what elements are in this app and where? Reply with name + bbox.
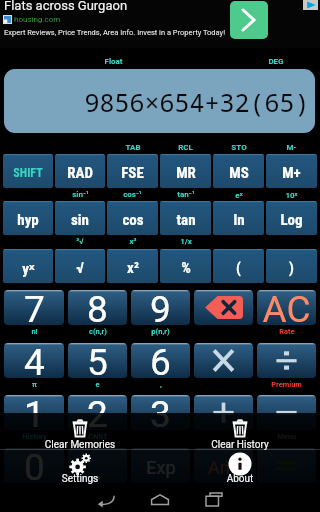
button[interactable]: hyp (3, 201, 53, 235)
staticText: x² (127, 259, 139, 277)
staticText: FSE (121, 164, 144, 182)
button[interactable]: yˣ (3, 249, 53, 283)
staticText: M- (286, 143, 297, 152)
staticText: AC (262, 288, 311, 331)
staticText: 9856×654+32(65) (84, 85, 310, 119)
button[interactable]: ln (213, 201, 264, 235)
button[interactable]: % (160, 249, 211, 283)
button[interactable]: 2 (68, 395, 127, 430)
staticText: tan (176, 211, 196, 229)
button[interactable]: M+ (266, 154, 317, 188)
button[interactable]: sin (55, 201, 105, 235)
button[interactable]: . (68, 448, 127, 483)
button[interactable]: 6 (131, 343, 190, 378)
staticText: eˣ (235, 189, 243, 200)
button[interactable]: 7 (4, 290, 64, 325)
button[interactable]: MS (213, 154, 264, 188)
button[interactable]: x² (107, 249, 158, 283)
button[interactable]: Back (79, 487, 133, 512)
button[interactable]: Clear History (182, 418, 298, 451)
button[interactable]: 0 (4, 448, 64, 483)
button[interactable]: Open ad (230, 1, 268, 39)
staticText: π (32, 380, 37, 389)
staticText: 1 (24, 393, 45, 436)
button[interactable]: √ (55, 249, 105, 283)
button[interactable]: 5 (68, 343, 127, 378)
staticText: 1/x (180, 237, 192, 246)
button[interactable]: Clear Memories (22, 418, 138, 451)
staticText: tan⁻¹ (177, 190, 195, 199)
button[interactable]: tan (160, 201, 211, 235)
staticText: ( (236, 259, 241, 277)
button[interactable]: ) (266, 249, 317, 283)
button[interactable]: 1 (4, 395, 64, 430)
staticText: e (95, 380, 100, 389)
staticText: Flats across Gurgaon (4, 0, 128, 13)
button[interactable]: Minus (257, 395, 316, 430)
button[interactable]: 9 (131, 290, 190, 325)
staticText: About (182, 473, 298, 485)
staticText: RAD (67, 164, 93, 182)
staticText: 9 (150, 288, 171, 331)
staticText: , (160, 380, 162, 389)
staticText: sin (71, 211, 89, 229)
staticText: SHIFT (13, 166, 43, 180)
staticText: 2 (87, 393, 108, 436)
staticText: MS (229, 164, 249, 182)
staticText: % (181, 259, 191, 277)
button[interactable]: cos (107, 201, 158, 235)
staticText: 3 (150, 393, 171, 436)
button[interactable]: Equals (257, 448, 316, 483)
staticText: Premium (271, 380, 302, 389)
button[interactable]: Divide (257, 343, 316, 378)
staticText: TAB (125, 143, 141, 152)
staticText: housing.com (14, 15, 61, 24)
button[interactable]: 8 (68, 290, 127, 325)
button[interactable]: Ans (194, 448, 253, 483)
button[interactable]: Exp (131, 448, 190, 483)
other: Delete (205, 296, 243, 319)
button[interactable]: Flats across Gurgaon (0, 0, 320, 48)
button[interactable]: Multiply (194, 343, 253, 378)
other: Multiply (212, 349, 235, 372)
button[interactable]: Plus (194, 395, 253, 430)
button[interactable]: About (182, 452, 298, 485)
button[interactable]: 9856×654+32(65) (4, 69, 315, 133)
staticText: ) (289, 259, 294, 277)
button[interactable]: ( (213, 249, 264, 283)
other: Plus (212, 401, 235, 424)
button[interactable]: Settings (22, 452, 138, 485)
button[interactable]: 3 (131, 395, 190, 430)
staticText: 7 (24, 288, 45, 331)
button[interactable]: FSE (107, 154, 158, 188)
button[interactable]: Delete (194, 290, 253, 325)
staticText: n! (31, 327, 38, 336)
staticText: yˣ (22, 258, 35, 278)
staticText: Settings (22, 473, 138, 485)
staticText: MR (176, 164, 196, 182)
staticText: sin⁻¹ (72, 190, 89, 199)
button[interactable]: MR (160, 154, 211, 188)
staticText: 8 (87, 288, 108, 331)
button[interactable]: 4 (4, 343, 64, 378)
button[interactable]: SHIFT (3, 154, 53, 188)
staticText: ln (233, 211, 245, 229)
staticText: . (93, 446, 103, 489)
staticText: hyp (17, 211, 39, 229)
button[interactable]: AC (257, 290, 316, 325)
other: Divide (275, 349, 298, 372)
staticText: CNST (88, 432, 108, 441)
button[interactable]: Log (266, 201, 317, 235)
staticText: ³√ (76, 237, 84, 246)
staticText: cos⁻¹ (123, 190, 142, 199)
staticText: Clear History (182, 439, 298, 451)
staticText: 6 (150, 341, 171, 384)
button[interactable]: Home (133, 487, 187, 512)
staticText: History (22, 432, 47, 441)
staticText: STO (231, 143, 247, 152)
staticText: Menu (277, 432, 297, 441)
button[interactable]: RAD (55, 154, 105, 188)
staticText: cos (122, 211, 144, 229)
button[interactable]: Recents (187, 487, 241, 512)
